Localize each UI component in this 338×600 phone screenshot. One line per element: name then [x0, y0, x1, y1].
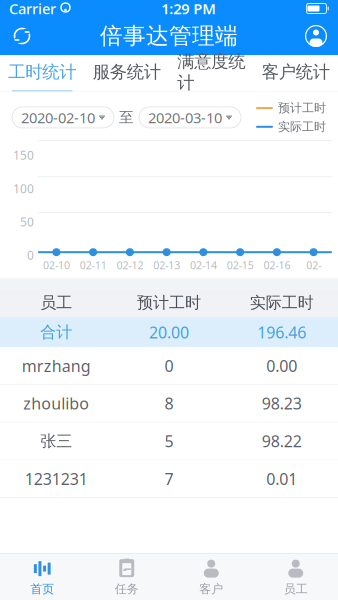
staticText: 客户统计 [262, 61, 330, 83]
staticText: 2020-02-10 [21, 108, 95, 127]
staticText: 7 [164, 468, 173, 489]
staticText: 首页 [30, 582, 54, 596]
staticText: 满意度统计 [177, 51, 245, 93]
staticText: 员工 [284, 582, 308, 596]
staticText: 预计工时 [137, 293, 201, 313]
button[interactable]: 工时统计 [0, 55, 84, 91]
staticText: 至 [119, 108, 134, 126]
button[interactable]: 满意度统计 [169, 55, 253, 91]
staticText: 合计 [40, 322, 72, 342]
staticText: 倍事达管理端 [100, 22, 238, 50]
button[interactable]: 张三 [0, 423, 338, 460]
staticText: 张三 [40, 431, 72, 451]
button[interactable]: 任务 [84, 554, 169, 600]
button[interactable]: 1231231 [0, 460, 338, 498]
button[interactable]: 首页 [0, 554, 84, 600]
staticText: 2020-03-10 [148, 108, 222, 127]
staticText: 1231231 [25, 468, 88, 489]
staticText: 02-13 [153, 258, 180, 272]
staticText: 0 [27, 247, 34, 263]
button[interactable]: 客户 [169, 554, 253, 600]
staticText: 8 [164, 393, 173, 414]
staticText: 02-10 [43, 258, 70, 272]
staticText: 02-12 [116, 258, 143, 272]
staticText: 预计工时 [278, 101, 326, 115]
staticText: 1:29 PM [161, 0, 216, 18]
button[interactable]: 服务统计 [84, 55, 169, 91]
staticText: 196.46 [257, 322, 306, 343]
staticText: 98.22 [262, 430, 302, 452]
staticText: 150 [13, 147, 34, 163]
staticText: 员工 [40, 293, 72, 313]
staticText: 50 [20, 214, 34, 230]
staticText: 客户 [199, 582, 223, 596]
staticText: Carrier [9, 0, 56, 18]
button[interactable]: mrzhang [0, 347, 338, 385]
staticText: 100 [13, 180, 34, 196]
button[interactable]: 员工 [253, 554, 338, 600]
staticText: 02-11 [80, 258, 107, 272]
staticText: 5 [164, 430, 173, 452]
staticText: 任务 [115, 582, 139, 596]
staticText: 98.23 [262, 393, 302, 414]
staticText: 20.00 [149, 322, 189, 343]
button[interactable]: zhoulibo [0, 385, 338, 423]
staticText: 02-15 [227, 258, 254, 272]
staticText: 0.01 [266, 468, 297, 489]
button[interactable]: 账户 [294, 18, 338, 54]
staticText: 02-14 [190, 258, 217, 272]
staticText: 工时统计 [8, 61, 76, 83]
staticText: zhoulibo [23, 393, 89, 414]
button[interactable]: 刷新 [0, 18, 44, 54]
staticText: 0.00 [266, 355, 297, 376]
button[interactable]: 2020-03-10 [139, 107, 241, 128]
staticText: mrzhang [22, 355, 91, 376]
staticText: 02-16 [263, 258, 290, 272]
staticText: 0 [164, 355, 173, 376]
staticText: 服务统计 [93, 61, 161, 83]
staticText: 实际工时 [250, 293, 314, 313]
staticText: 02- [306, 258, 321, 272]
button[interactable]: 2020-02-10 [12, 107, 114, 128]
staticText: 实际工时 [278, 119, 326, 134]
button[interactable]: 客户统计 [253, 55, 338, 91]
